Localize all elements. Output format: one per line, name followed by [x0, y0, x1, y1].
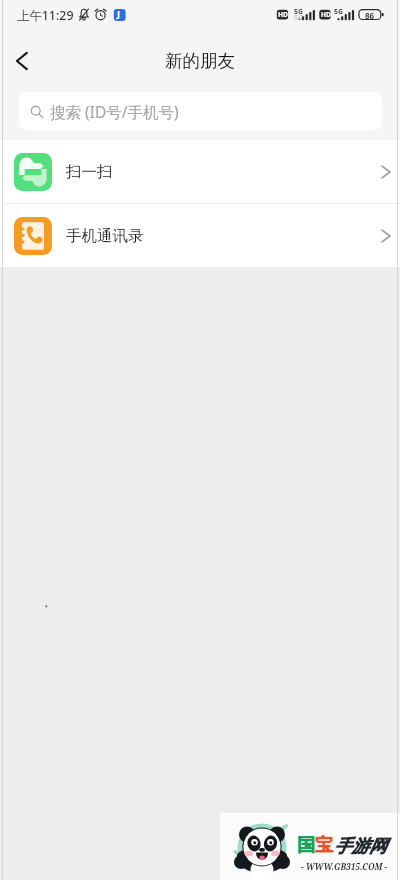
staticText: 搜索 (ID号/手机号) — [50, 101, 179, 122]
staticText: HD — [278, 10, 288, 19]
button[interactable]: Back — [2, 41, 42, 81]
staticText: 新的朋友 — [165, 50, 235, 72]
staticText: J — [117, 7, 121, 20]
staticText: 5G — [294, 13, 303, 22]
staticText: - WWW.GB315.COM - — [301, 861, 388, 872]
staticText: 国 — [297, 834, 315, 857]
button[interactable]: 扫一扫 — [0, 140, 400, 203]
staticText: 手机通讯录 — [66, 226, 144, 246]
button[interactable]: 手机通讯录 — [0, 204, 400, 267]
staticText: 5G — [294, 7, 303, 16]
staticText: HD — [321, 10, 331, 19]
staticText: 扫一扫 — [66, 162, 113, 182]
staticText: 86 — [365, 10, 375, 21]
staticText: 手游网 — [334, 835, 387, 857]
staticText: 5G — [334, 7, 343, 16]
button[interactable]: 搜索 (ID号/手机号) — [19, 92, 382, 130]
staticText: 上午11:29 — [17, 7, 74, 24]
staticText: 宝 — [315, 834, 333, 857]
